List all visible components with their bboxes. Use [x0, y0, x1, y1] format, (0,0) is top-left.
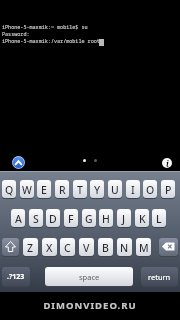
button[interactable]: F [64, 209, 78, 227]
button[interactable]: V [79, 238, 94, 256]
staticText: I [131, 183, 135, 197]
button[interactable]: i [162, 158, 172, 168]
button[interactable]: S [29, 209, 43, 227]
button[interactable]: C [60, 238, 75, 256]
button[interactable]: X [42, 238, 57, 256]
staticText: H [102, 212, 110, 226]
staticText: U [111, 183, 119, 197]
staticText: Z [27, 241, 34, 255]
button[interactable]: O [143, 180, 157, 198]
staticText: M [139, 241, 149, 255]
button[interactable]: .?123 [2, 267, 30, 286]
button[interactable]: I [126, 180, 140, 198]
staticText: G [85, 212, 93, 226]
staticText: W [22, 183, 32, 197]
staticText: L [156, 212, 162, 226]
button[interactable] [159, 238, 178, 256]
button[interactable]: M [136, 238, 151, 256]
staticText: .?123 [7, 272, 25, 282]
button[interactable]: D [46, 209, 60, 227]
button[interactable]: space [45, 267, 133, 286]
staticText: return [148, 272, 171, 282]
button[interactable]: Y [90, 180, 104, 198]
staticText: K [139, 212, 146, 226]
staticText: D [49, 212, 57, 226]
staticText: O [146, 183, 155, 197]
button[interactable]: J [117, 209, 131, 227]
staticText: iPhone-5-maxmik:~ mobile$ su [2, 24, 88, 31]
staticText: S [33, 212, 39, 226]
staticText: N [120, 241, 129, 255]
button[interactable]: A [11, 209, 25, 227]
staticText: space [79, 272, 100, 282]
staticText: J [122, 212, 126, 226]
staticText: E [41, 183, 47, 197]
button[interactable]: P [161, 180, 175, 198]
button[interactable]: B [98, 238, 113, 256]
staticText: i [166, 158, 169, 168]
button[interactable] [2, 238, 19, 256]
staticText: Q [5, 183, 14, 197]
button[interactable]: W [20, 180, 34, 198]
staticText: V [83, 241, 90, 255]
button[interactable]: L [152, 209, 166, 227]
button[interactable]: H [99, 209, 113, 227]
button[interactable]: G [82, 209, 96, 227]
button[interactable]: E [37, 180, 51, 198]
staticText: iPhone-5-maxmik:/var/mobile root# [2, 38, 103, 45]
staticText: T [77, 183, 83, 197]
staticText: Password: [2, 31, 30, 38]
button[interactable]: R [55, 180, 69, 198]
staticText: Y [94, 183, 101, 197]
button[interactable]: return [141, 267, 178, 286]
button[interactable]: K [135, 209, 149, 227]
button[interactable]: U [108, 180, 122, 198]
staticText: R [59, 183, 66, 197]
staticText: P [165, 183, 172, 197]
staticText: C [64, 241, 71, 255]
button[interactable] [12, 156, 25, 169]
staticText: B [102, 241, 109, 255]
staticText: DIMONVIDEO.RU [0, 299, 180, 312]
staticText: A [15, 212, 22, 226]
staticText: F [68, 212, 74, 226]
button[interactable]: Q [2, 180, 16, 198]
button[interactable]: N [117, 238, 132, 256]
button[interactable]: Z [23, 238, 38, 256]
staticText: X [46, 241, 53, 255]
button[interactable]: T [73, 180, 87, 198]
